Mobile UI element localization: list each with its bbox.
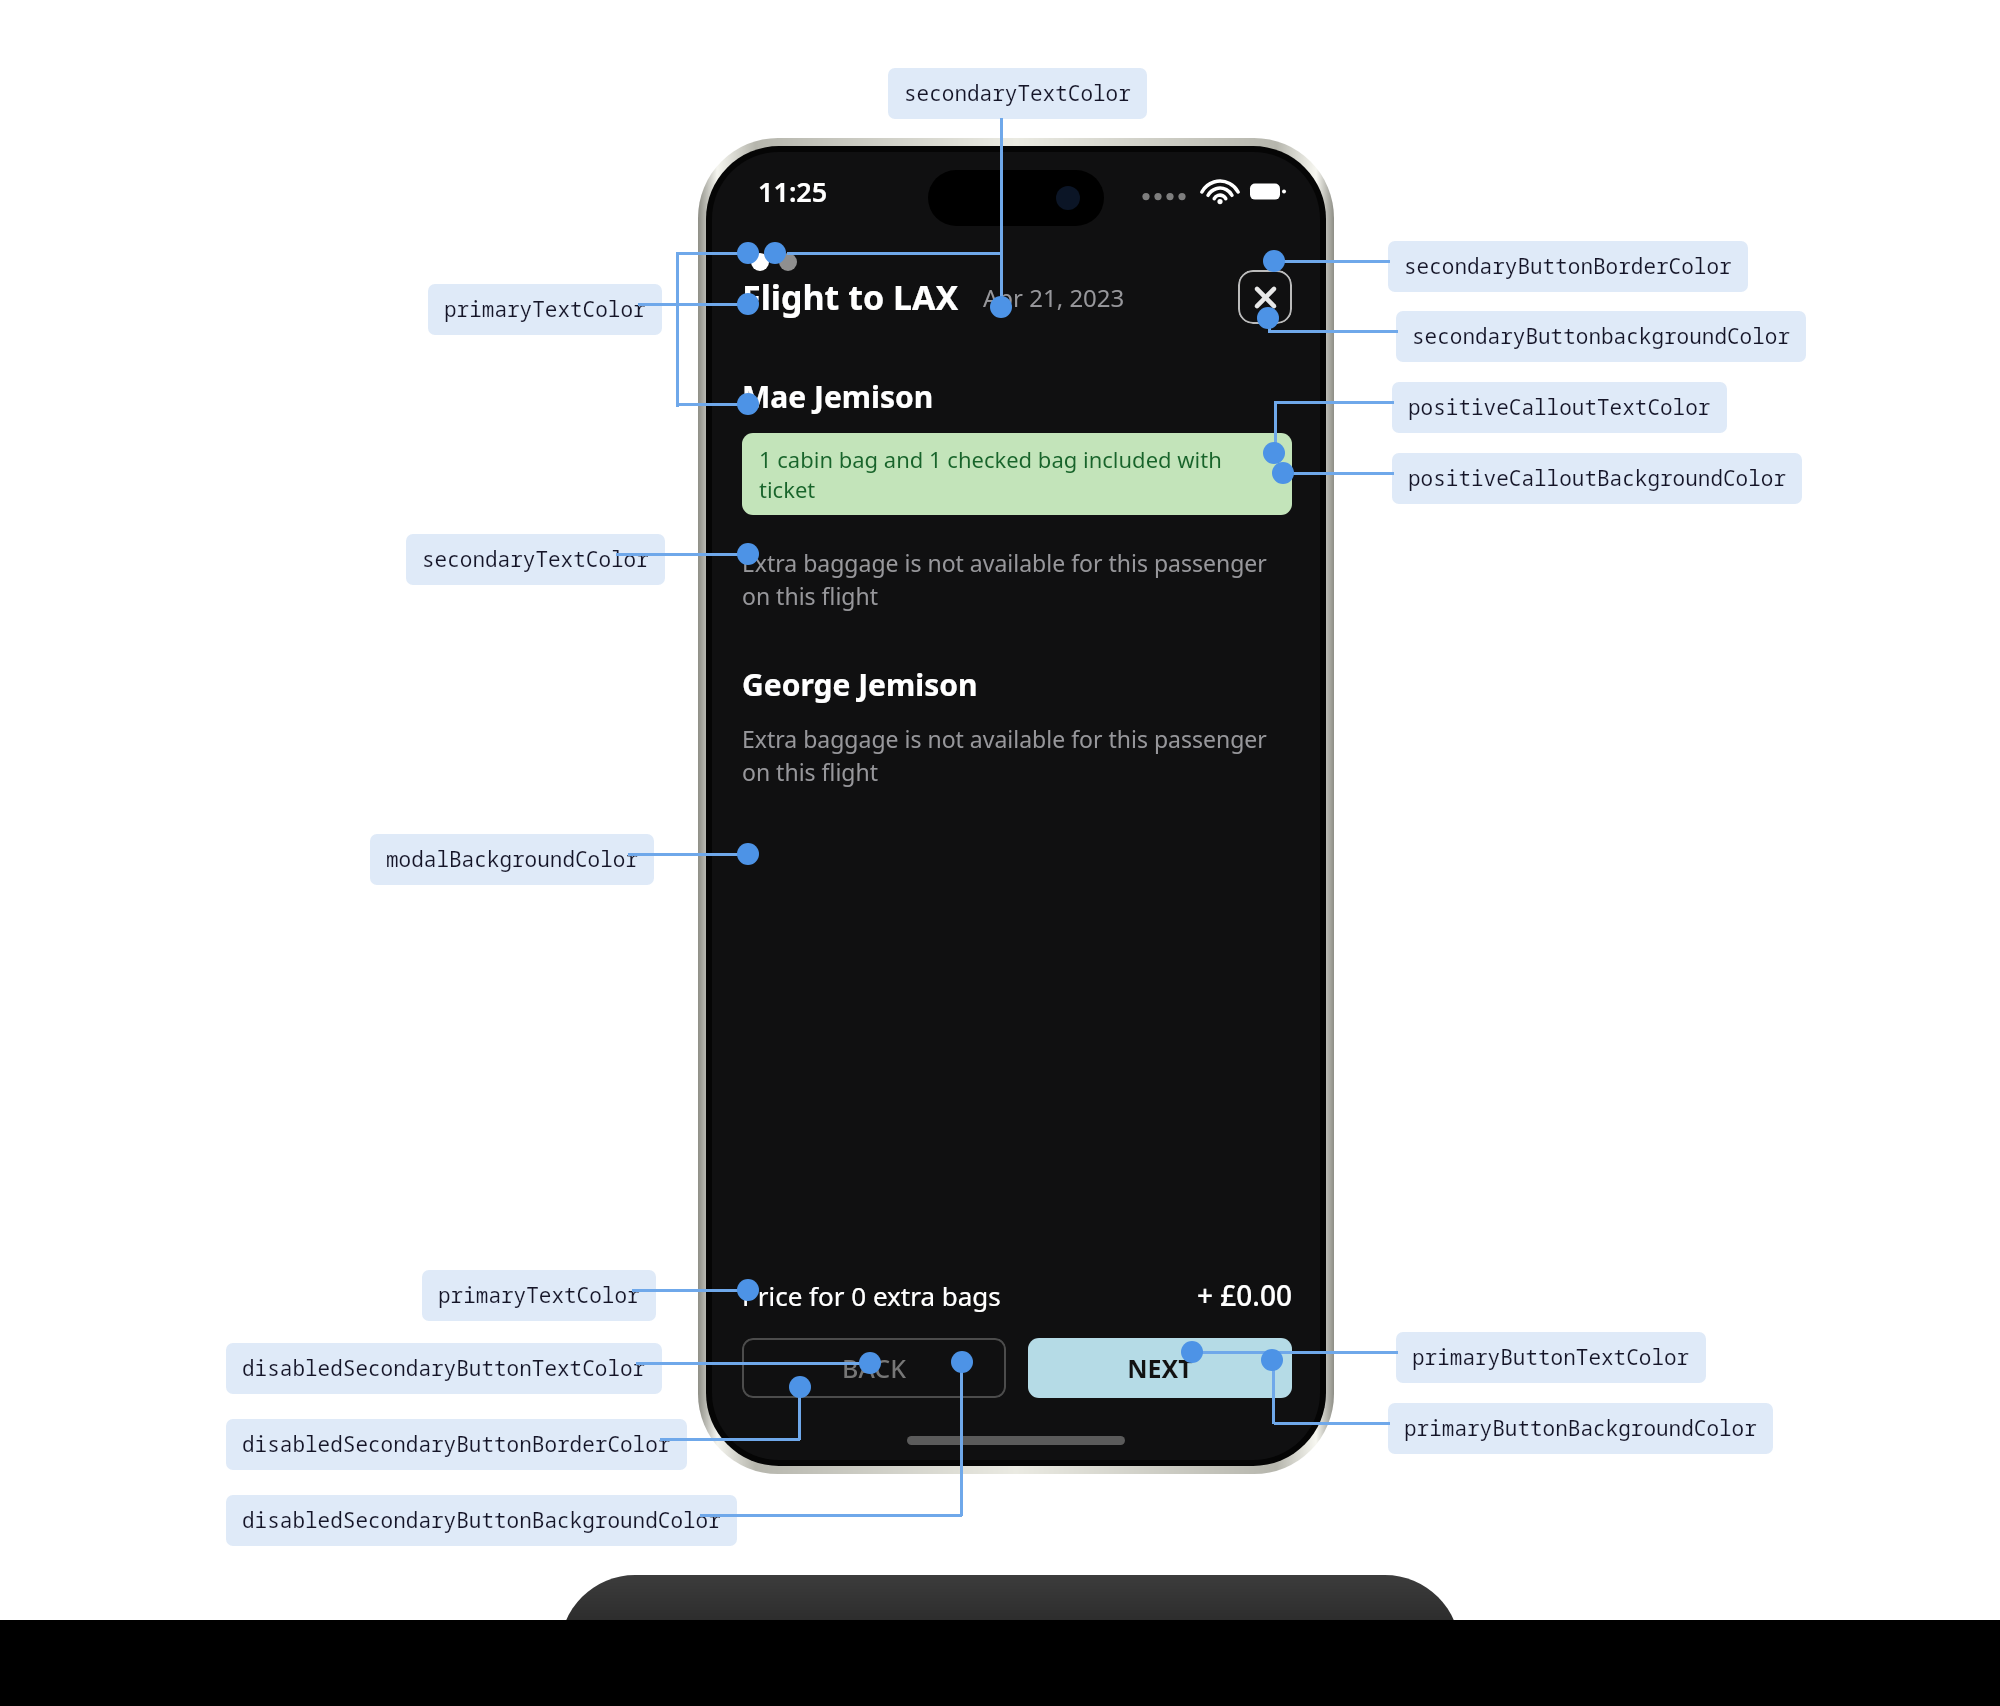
staticText: Mae Jemison xyxy=(742,376,934,417)
staticText: disabledSecondaryButtonBackgroundColor xyxy=(242,1506,721,1535)
staticText: George Jemison xyxy=(742,664,978,705)
staticText: 1 cabin bag and 1 checked bag included w… xyxy=(759,444,1275,504)
staticText: secondaryTextColor xyxy=(422,545,649,574)
staticText: modalBackgroundColor xyxy=(386,845,638,874)
staticText: Flight to LAX xyxy=(742,274,959,320)
staticText: BACK xyxy=(842,1351,906,1385)
staticText: secondaryTextColor xyxy=(904,79,1131,108)
staticText: secondaryButtonBorderColor xyxy=(1404,252,1732,281)
staticText: positiveCalloutBackgroundColor xyxy=(1408,464,1786,493)
staticText: primaryTextColor xyxy=(438,1281,640,1310)
staticText: Extra baggage is not available for this … xyxy=(742,547,1292,612)
staticText: disabledSecondaryButtonTextColor xyxy=(242,1354,646,1383)
button[interactable]: NEXT xyxy=(1028,1338,1292,1398)
staticText: Apr 21, 2023 xyxy=(983,281,1125,314)
staticText: disabledSecondaryButtonBorderColor xyxy=(242,1430,671,1459)
staticText: Price for 0 extra bags xyxy=(742,1278,1001,1313)
button[interactable]: Close xyxy=(1238,270,1292,324)
staticText: positiveCalloutTextColor xyxy=(1408,393,1711,422)
staticText: Extra baggage is not available for this … xyxy=(742,723,1292,788)
staticText: primaryButtonBackgroundColor xyxy=(1404,1414,1757,1443)
staticText: primaryTextColor xyxy=(444,295,646,324)
staticText: primaryButtonTextColor xyxy=(1412,1343,1690,1372)
button[interactable]: BACK xyxy=(742,1338,1006,1398)
staticText: + £0.00 xyxy=(1197,1276,1292,1314)
staticText: 11:25 xyxy=(758,173,828,210)
staticText: secondaryButtonbackgroundColor xyxy=(1412,322,1790,351)
staticText: NEXT xyxy=(1127,1351,1193,1385)
